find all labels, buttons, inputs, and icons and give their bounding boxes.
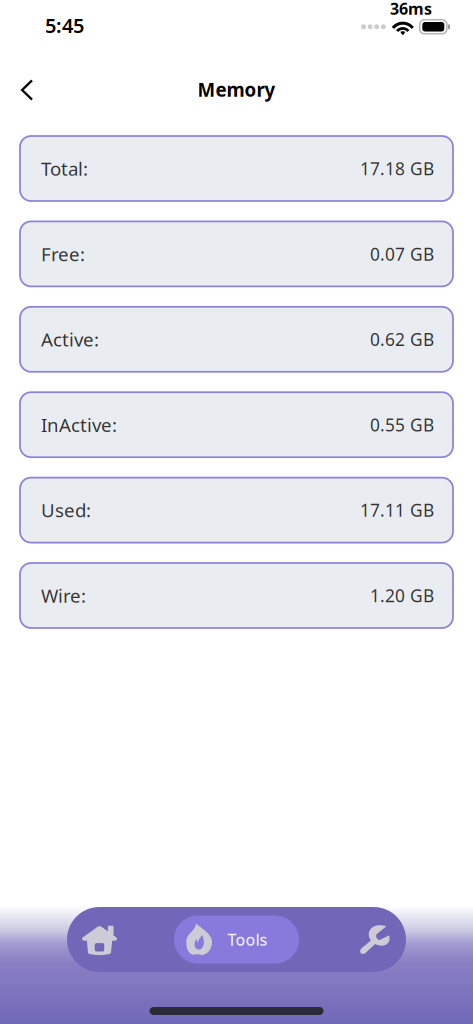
button[interactable]: Tools	[174, 915, 299, 963]
staticText: 17.11 GB	[360, 499, 434, 522]
button[interactable]: Back	[5, 68, 49, 112]
staticText: 17.18 GB	[360, 157, 434, 180]
staticText: InActive:	[41, 412, 117, 437]
staticText: Tools	[228, 929, 268, 950]
staticText: Memory	[197, 77, 275, 102]
staticText: 36ms	[390, 0, 432, 19]
staticText: 0.55 GB	[370, 413, 434, 436]
staticText: Total:	[41, 156, 88, 181]
staticText: Active:	[41, 327, 99, 352]
staticText: 0.62 GB	[370, 328, 434, 351]
staticText: 0.07 GB	[370, 242, 434, 265]
staticText: 5:45	[45, 12, 84, 39]
staticText: Used:	[41, 498, 91, 522]
staticText: Wire:	[41, 583, 86, 608]
staticText: Free:	[41, 241, 85, 266]
staticText: 1.20 GB	[370, 584, 434, 607]
button[interactable]: Home	[67, 907, 132, 972]
button[interactable]: Tools settings	[341, 907, 406, 972]
